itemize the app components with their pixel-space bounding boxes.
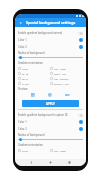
button[interactable]: Radius slider <box>18 56 83 59</box>
button[interactable]: Color 1 <box>18 119 83 125</box>
button[interactable]: Color 1 <box>18 37 83 43</box>
staticText: Enable gradient background in option III <box>18 113 77 117</box>
staticText: Color 1 <box>18 38 79 42</box>
button[interactable]: Recents <box>67 160 72 165</box>
staticText: TL-BR <box>22 82 29 85</box>
staticText: Right - Left <box>54 72 67 75</box>
staticText: Color 2 <box>18 45 79 49</box>
button[interactable]: Top - Bottom <box>50 76 83 81</box>
button[interactable]: BL-TR <box>18 71 50 76</box>
staticText: Radius of background <box>18 51 45 55</box>
staticText: Color 2 <box>18 127 79 131</box>
staticText: TR-BL <box>22 149 29 152</box>
staticText: Left - Right <box>54 149 67 152</box>
button[interactable]: Home <box>48 160 53 165</box>
staticText: Radius of background <box>18 133 45 137</box>
button[interactable]: Right - Left <box>50 71 83 76</box>
button[interactable]: Back <box>18 20 24 26</box>
staticText: Color 1 <box>18 120 79 124</box>
button[interactable]: Radius slider <box>18 138 83 141</box>
button[interactable]: BR-TL <box>18 76 50 81</box>
staticText: TR-BL <box>22 67 29 70</box>
staticText: Top - Bottom <box>54 77 69 80</box>
button[interactable]: Enable gradient background normal <box>18 30 83 36</box>
button[interactable]: TL-BR <box>18 81 50 86</box>
button[interactable]: TR-BL <box>18 148 50 153</box>
staticText: APPLY <box>46 102 55 106</box>
staticText: Left - Right <box>54 67 67 70</box>
staticText: Enable gradient background normal <box>18 31 77 35</box>
button[interactable]: Bottom - Top <box>50 81 83 86</box>
staticText: BL-TR <box>22 72 29 75</box>
staticText: Preview <box>18 87 28 91</box>
button[interactable]: Enable gradient background in option III <box>18 112 83 118</box>
button[interactable]: Left - Right <box>50 148 83 153</box>
button[interactable]: Toggle <box>77 31 83 35</box>
button[interactable]: Back <box>29 160 34 165</box>
staticText: Special background settings <box>26 20 76 25</box>
button[interactable]: APPLY <box>22 100 79 107</box>
staticText: Gradient orientation <box>18 61 43 65</box>
staticText: Bottom - Top <box>54 82 69 85</box>
button[interactable]: Toggle <box>77 113 83 117</box>
button[interactable]: Left - Right <box>50 66 83 71</box>
button[interactable]: Color 2 <box>18 44 83 50</box>
button[interactable]: Color 2 <box>18 126 83 132</box>
staticText: BR-TL <box>22 77 29 80</box>
staticText: Gradient orientation <box>18 143 43 147</box>
button[interactable]: TR-BL <box>18 66 50 71</box>
